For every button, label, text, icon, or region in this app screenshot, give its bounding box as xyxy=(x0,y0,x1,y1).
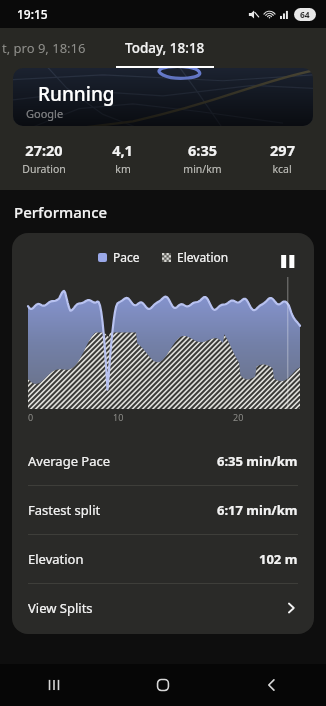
staticText: 0 xyxy=(28,411,34,423)
staticText: km xyxy=(115,162,131,176)
button[interactable]: Back xyxy=(217,664,326,706)
button[interactable]: Running xyxy=(13,68,313,126)
staticText: Performance xyxy=(14,202,108,222)
staticText: Average Pace xyxy=(28,452,111,470)
staticText: Running xyxy=(38,81,115,107)
staticText: Google xyxy=(26,106,64,121)
button[interactable]: Average Pace xyxy=(12,437,314,485)
button[interactable]: Home xyxy=(108,664,217,706)
staticText: Today, 18:18 xyxy=(125,39,205,57)
staticText: min/km xyxy=(183,162,222,176)
staticText: 27:20 xyxy=(25,140,63,160)
staticText: Fastest split xyxy=(28,501,101,519)
button[interactable]: t, pro 9, 18:16 xyxy=(0,39,86,57)
button[interactable]: Today, 18:18 xyxy=(113,35,217,61)
staticText: 6:35 min/km xyxy=(217,452,298,470)
staticText: 64 xyxy=(300,9,310,21)
staticText: 19:15 xyxy=(17,6,48,22)
staticText: 10 xyxy=(113,411,124,423)
staticText: View Splits xyxy=(28,599,93,617)
button[interactable]: Elevation xyxy=(12,535,314,583)
staticText: 102 m xyxy=(259,550,298,568)
button[interactable]: Recent apps xyxy=(0,664,108,706)
staticText: Elevation xyxy=(177,249,229,265)
staticText: Elevation xyxy=(28,550,84,568)
button[interactable]: View Splits xyxy=(12,584,314,632)
staticText: Pace xyxy=(113,249,140,265)
staticText: Duration xyxy=(22,162,66,176)
staticText: 6:17 min/km xyxy=(217,501,298,519)
staticText: 20 xyxy=(233,411,244,423)
staticText: kcal xyxy=(272,162,292,176)
staticText: 6:35 xyxy=(188,140,217,160)
button[interactable]: Fastest split xyxy=(12,486,314,534)
staticText: 4,1 xyxy=(112,140,133,160)
staticText: 297 xyxy=(270,140,295,160)
